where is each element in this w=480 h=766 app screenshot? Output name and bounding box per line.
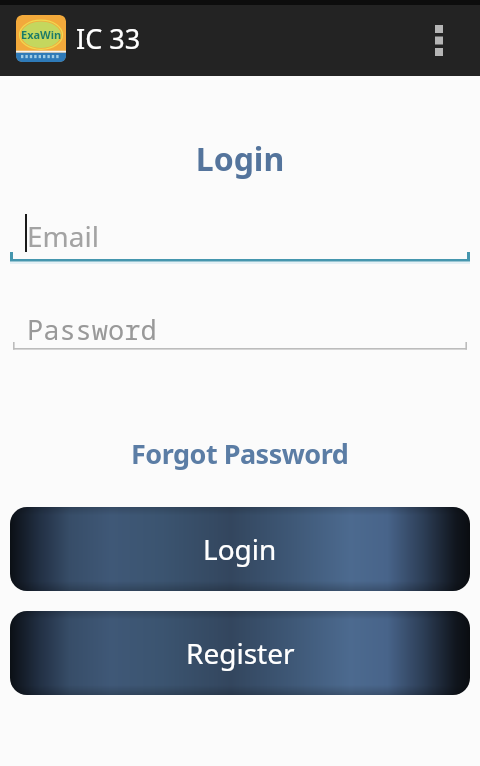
- button[interactable]: Login: [10, 507, 470, 591]
- button[interactable]: [420, 12, 458, 67]
- staticText: Email: [27, 217, 99, 255]
- staticText: IC 33: [76, 20, 141, 57]
- button[interactable]: Register: [10, 611, 470, 695]
- staticText: Password: [27, 311, 157, 348]
- button[interactable]: Password: [10, 303, 470, 353]
- staticText: Login: [203, 530, 277, 568]
- button[interactable]: Email: [10, 205, 470, 265]
- button[interactable]: Forgot Password: [131, 435, 349, 472]
- staticText: ExaWin: [21, 27, 62, 42]
- staticText: Register: [186, 634, 295, 672]
- staticText: Login: [0, 137, 480, 181]
